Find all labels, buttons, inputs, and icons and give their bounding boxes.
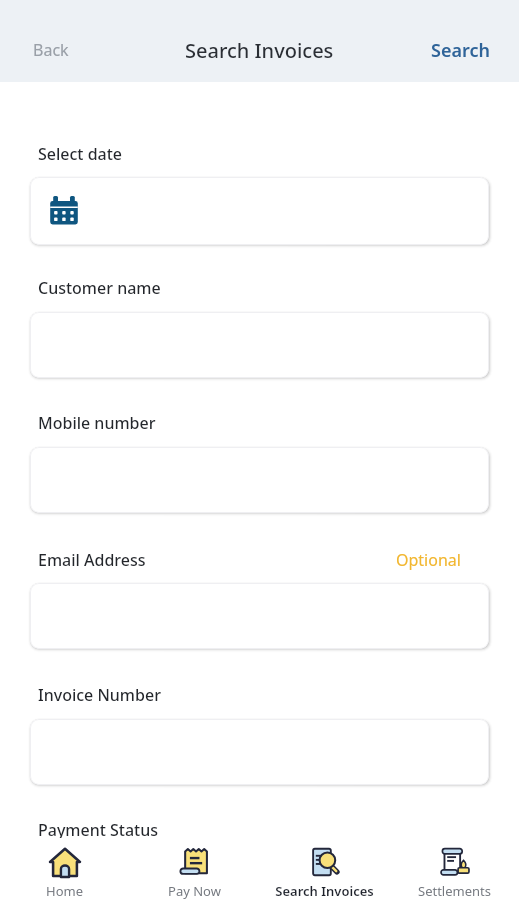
button[interactable]: Settlements <box>389 838 519 900</box>
button[interactable] <box>30 447 489 513</box>
staticText: Search Invoices <box>185 37 334 64</box>
staticText: Home <box>46 882 83 900</box>
staticText: Search Invoices <box>275 882 374 900</box>
button[interactable]: Back <box>33 39 69 61</box>
button[interactable] <box>30 312 489 378</box>
staticText: Email Address <box>38 549 146 571</box>
staticText: Settlements <box>418 882 491 900</box>
button[interactable]: Search <box>431 38 490 63</box>
button[interactable]: Pay Now <box>129 838 259 900</box>
staticText: Payment Status <box>38 819 159 838</box>
staticText: Invoice Number <box>38 684 161 706</box>
staticText: Optional <box>396 549 461 571</box>
staticText: Pay Now <box>168 882 221 900</box>
button[interactable] <box>30 719 489 785</box>
staticText: Mobile number <box>38 412 156 434</box>
button[interactable] <box>30 583 489 649</box>
staticText: Customer name <box>38 277 161 299</box>
button[interactable] <box>30 177 489 245</box>
button[interactable]: Search Invoices <box>259 838 389 900</box>
staticText: Select date <box>38 143 123 165</box>
button[interactable]: Home <box>0 838 129 900</box>
